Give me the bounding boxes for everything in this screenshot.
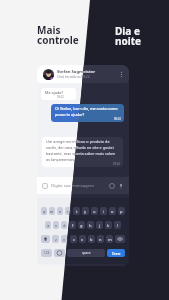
button[interactable]: g: [78, 221, 85, 229]
staticText: v: [81, 237, 84, 242]
button[interactable]: Stefan Sagmeister: [37, 65, 129, 83]
button[interactable]: Emoji: [54, 249, 65, 257]
button[interactable]: More options: [118, 71, 125, 78]
button[interactable]: h: [87, 221, 94, 229]
staticText: f: [72, 223, 74, 228]
button[interactable]: f: [69, 221, 76, 229]
button[interactable]: w: [49, 207, 55, 215]
staticText: d: [63, 223, 66, 228]
other: Attach: [42, 183, 48, 189]
button[interactable]: a: [45, 221, 51, 229]
button[interactable]: b: [88, 235, 95, 243]
staticText: y: [84, 209, 87, 214]
button[interactable]: o: [109, 207, 116, 215]
button[interactable]: m: [106, 235, 113, 243]
button[interactable]: space: [67, 249, 105, 257]
button[interactable]: space: [67, 249, 105, 257]
button[interactable]: t: [73, 207, 80, 215]
button[interactable]: p: [118, 207, 125, 215]
other: Voice message: [118, 183, 124, 189]
button[interactable]: i: [100, 207, 107, 215]
button[interactable]: s: [53, 221, 59, 229]
button[interactable]: a: [45, 221, 51, 229]
staticText: 123: [44, 251, 50, 255]
staticText: i: [103, 209, 105, 214]
button[interactable]: w: [49, 207, 55, 215]
staticText: Stefan Sagmeister: [57, 69, 96, 75]
button[interactable]: x: [61, 235, 68, 243]
button[interactable]: Done: [107, 249, 125, 257]
button[interactable]: o: [109, 207, 116, 215]
button[interactable]: q: [41, 207, 47, 215]
button[interactable]: t: [73, 207, 80, 215]
staticText: 09:22: [57, 95, 64, 99]
button[interactable]: p: [118, 207, 125, 215]
staticText: e: [59, 209, 62, 214]
button[interactable]: i: [100, 207, 107, 215]
button[interactable]: j: [96, 221, 103, 229]
button[interactable]: g: [78, 221, 85, 229]
button[interactable]: e: [57, 207, 63, 215]
button[interactable]: d: [61, 221, 67, 229]
button[interactable]: z: [52, 235, 59, 243]
staticText: u: [93, 209, 96, 214]
button[interactable]: n: [97, 235, 104, 243]
button[interactable]: r: [65, 207, 71, 215]
staticText: Digite sua mensagem: [51, 183, 109, 189]
staticText: 09:24: [113, 162, 120, 166]
staticText: x: [63, 237, 66, 242]
button[interactable]: r: [65, 207, 71, 215]
staticText: u: [93, 209, 96, 214]
button[interactable]: b: [88, 235, 95, 243]
other: Attach: [42, 183, 48, 189]
staticText: r: [67, 209, 69, 214]
staticText: space: [82, 251, 91, 255]
button[interactable]: Shift: [41, 235, 50, 243]
button[interactable]: Backspace: [115, 235, 125, 243]
button[interactable]: Backspace: [115, 235, 125, 243]
button[interactable]: f: [69, 221, 76, 229]
button[interactable]: 123: [41, 249, 52, 257]
button[interactable]: k: [105, 221, 112, 229]
staticText: k: [107, 223, 110, 228]
button[interactable]: j: [96, 221, 103, 229]
button[interactable]: v: [79, 235, 86, 243]
button[interactable]: n: [97, 235, 104, 243]
button[interactable]: d: [61, 221, 67, 229]
button[interactable]: y: [82, 207, 89, 215]
button[interactable]: Attach: [42, 177, 124, 194]
button[interactable]: y: [82, 207, 89, 215]
button[interactable]: Done: [107, 249, 125, 257]
button[interactable]: h: [87, 221, 94, 229]
button[interactable]: Emoji: [54, 249, 65, 257]
staticText: z: [55, 237, 57, 242]
other: Voice message: [118, 183, 124, 189]
button[interactable]: x: [61, 235, 68, 243]
staticText: x: [63, 237, 66, 242]
button[interactable]: 123: [41, 249, 52, 257]
button[interactable]: e: [57, 207, 63, 215]
button[interactable]: c: [70, 235, 77, 243]
staticText: l: [117, 223, 119, 228]
button[interactable]: s: [53, 221, 59, 229]
button[interactable]: z: [52, 235, 59, 243]
staticText: Done: [112, 251, 121, 256]
button[interactable]: u: [91, 207, 98, 215]
staticText: h: [89, 223, 92, 228]
button[interactable]: u: [91, 207, 98, 215]
button[interactable]: More options: [118, 71, 125, 78]
button[interactable]: Shift: [41, 235, 50, 243]
button[interactable]: m: [106, 235, 113, 243]
button[interactable]: c: [70, 235, 77, 243]
button[interactable]: k: [105, 221, 112, 229]
button[interactable]: q: [41, 207, 47, 215]
staticText: w: [50, 209, 54, 214]
staticText: h: [89, 223, 92, 228]
button[interactable]: Attach: [42, 177, 124, 194]
button[interactable]: Stefan Sagmeister: [37, 65, 129, 83]
button[interactable]: l: [114, 221, 121, 229]
staticText: Me ajuda?: [45, 90, 64, 95]
button[interactable]: l: [114, 221, 121, 229]
staticText: o: [111, 209, 114, 214]
button[interactable]: v: [79, 235, 86, 243]
